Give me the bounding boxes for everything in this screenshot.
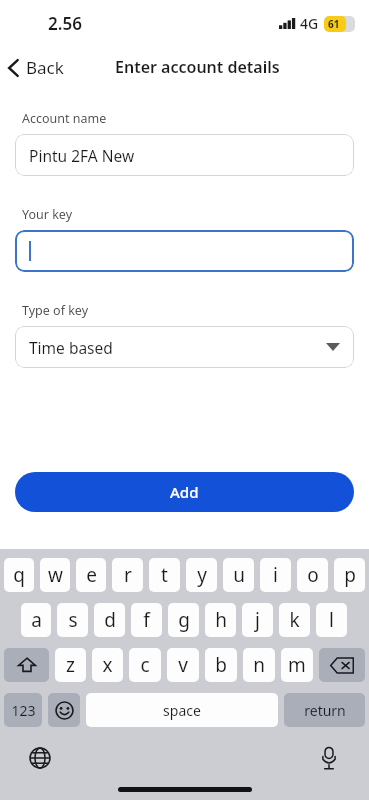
staticText: z xyxy=(66,652,75,678)
button[interactable]: f xyxy=(131,603,162,637)
button[interactable]: b xyxy=(205,648,237,682)
staticText: p xyxy=(344,562,356,588)
staticText: c xyxy=(140,652,150,678)
button[interactable]: Add xyxy=(15,472,354,512)
staticText: 123 xyxy=(11,701,36,720)
button[interactable]: c xyxy=(129,648,161,682)
staticText: Time based xyxy=(29,337,113,358)
staticText: 61 xyxy=(328,17,340,31)
staticText: y xyxy=(197,562,207,588)
staticText: u xyxy=(233,562,245,588)
staticText: r xyxy=(124,562,132,588)
staticText: g xyxy=(178,607,190,633)
button[interactable]: h xyxy=(205,603,236,637)
button[interactable]: t xyxy=(149,558,180,592)
button[interactable]: return xyxy=(284,693,365,727)
button[interactable] xyxy=(15,230,354,272)
staticText: return xyxy=(304,701,346,720)
staticText: Your key xyxy=(22,206,73,223)
button[interactable]: o xyxy=(297,558,328,592)
staticText: w xyxy=(48,562,63,588)
staticText: 2.56 xyxy=(48,12,82,35)
button[interactable]: q xyxy=(4,558,34,592)
button[interactable]: Time based xyxy=(15,326,354,368)
staticText: o xyxy=(307,562,319,588)
button[interactable]: Emoji xyxy=(48,693,80,727)
button[interactable]: i xyxy=(260,558,291,592)
button[interactable]: p xyxy=(334,558,365,592)
staticText: h xyxy=(215,607,227,633)
button[interactable]: Dictate xyxy=(311,740,347,776)
button[interactable]: g xyxy=(168,603,199,637)
button[interactable]: k xyxy=(279,603,310,637)
staticText: Add xyxy=(170,482,199,502)
button[interactable]: 123 xyxy=(4,693,42,727)
button[interactable]: Shift xyxy=(4,648,49,682)
staticText: Account name xyxy=(22,110,107,127)
staticText: x xyxy=(102,652,113,678)
staticText: n xyxy=(253,652,265,678)
button[interactable]: j xyxy=(242,603,273,637)
staticText: e xyxy=(86,562,97,588)
button[interactable]: m xyxy=(281,648,313,682)
staticText: s xyxy=(68,607,78,633)
button[interactable]: l xyxy=(316,603,347,637)
button[interactable]: n xyxy=(243,648,275,682)
button[interactable]: x xyxy=(92,648,123,682)
staticText: Pintu 2FA New xyxy=(29,145,135,166)
staticText: Enter account details xyxy=(115,56,280,78)
button[interactable]: u xyxy=(223,558,254,592)
staticText: 4G xyxy=(300,14,319,33)
button[interactable]: d xyxy=(94,603,125,637)
button[interactable]: w xyxy=(40,558,70,592)
button[interactable]: e xyxy=(76,558,106,592)
staticText: k xyxy=(289,607,300,633)
staticText: t xyxy=(161,562,168,588)
staticText: Back xyxy=(26,56,64,79)
button[interactable]: s xyxy=(57,603,88,637)
button[interactable]: r xyxy=(112,558,143,592)
staticText: Type of key xyxy=(22,302,89,319)
button[interactable]: y xyxy=(186,558,217,592)
staticText: d xyxy=(104,607,116,633)
staticText: space xyxy=(163,701,201,720)
staticText: l xyxy=(329,607,334,633)
staticText: i xyxy=(273,562,278,588)
staticText: b xyxy=(215,652,227,678)
button[interactable]: space xyxy=(86,693,278,727)
staticText: j xyxy=(255,607,260,633)
button[interactable]: v xyxy=(167,648,199,682)
button[interactable]: Pintu 2FA New xyxy=(15,134,354,176)
staticText: m xyxy=(288,652,306,678)
button[interactable]: z xyxy=(55,648,86,682)
staticText: a xyxy=(31,607,42,633)
button[interactable]: Back xyxy=(0,50,74,85)
staticText: q xyxy=(13,562,25,588)
button[interactable]: Change keyboard language xyxy=(22,740,58,776)
button[interactable]: a xyxy=(21,603,51,637)
staticText: v xyxy=(178,652,188,678)
button[interactable]: Delete xyxy=(319,648,365,682)
staticText: f xyxy=(143,607,150,633)
